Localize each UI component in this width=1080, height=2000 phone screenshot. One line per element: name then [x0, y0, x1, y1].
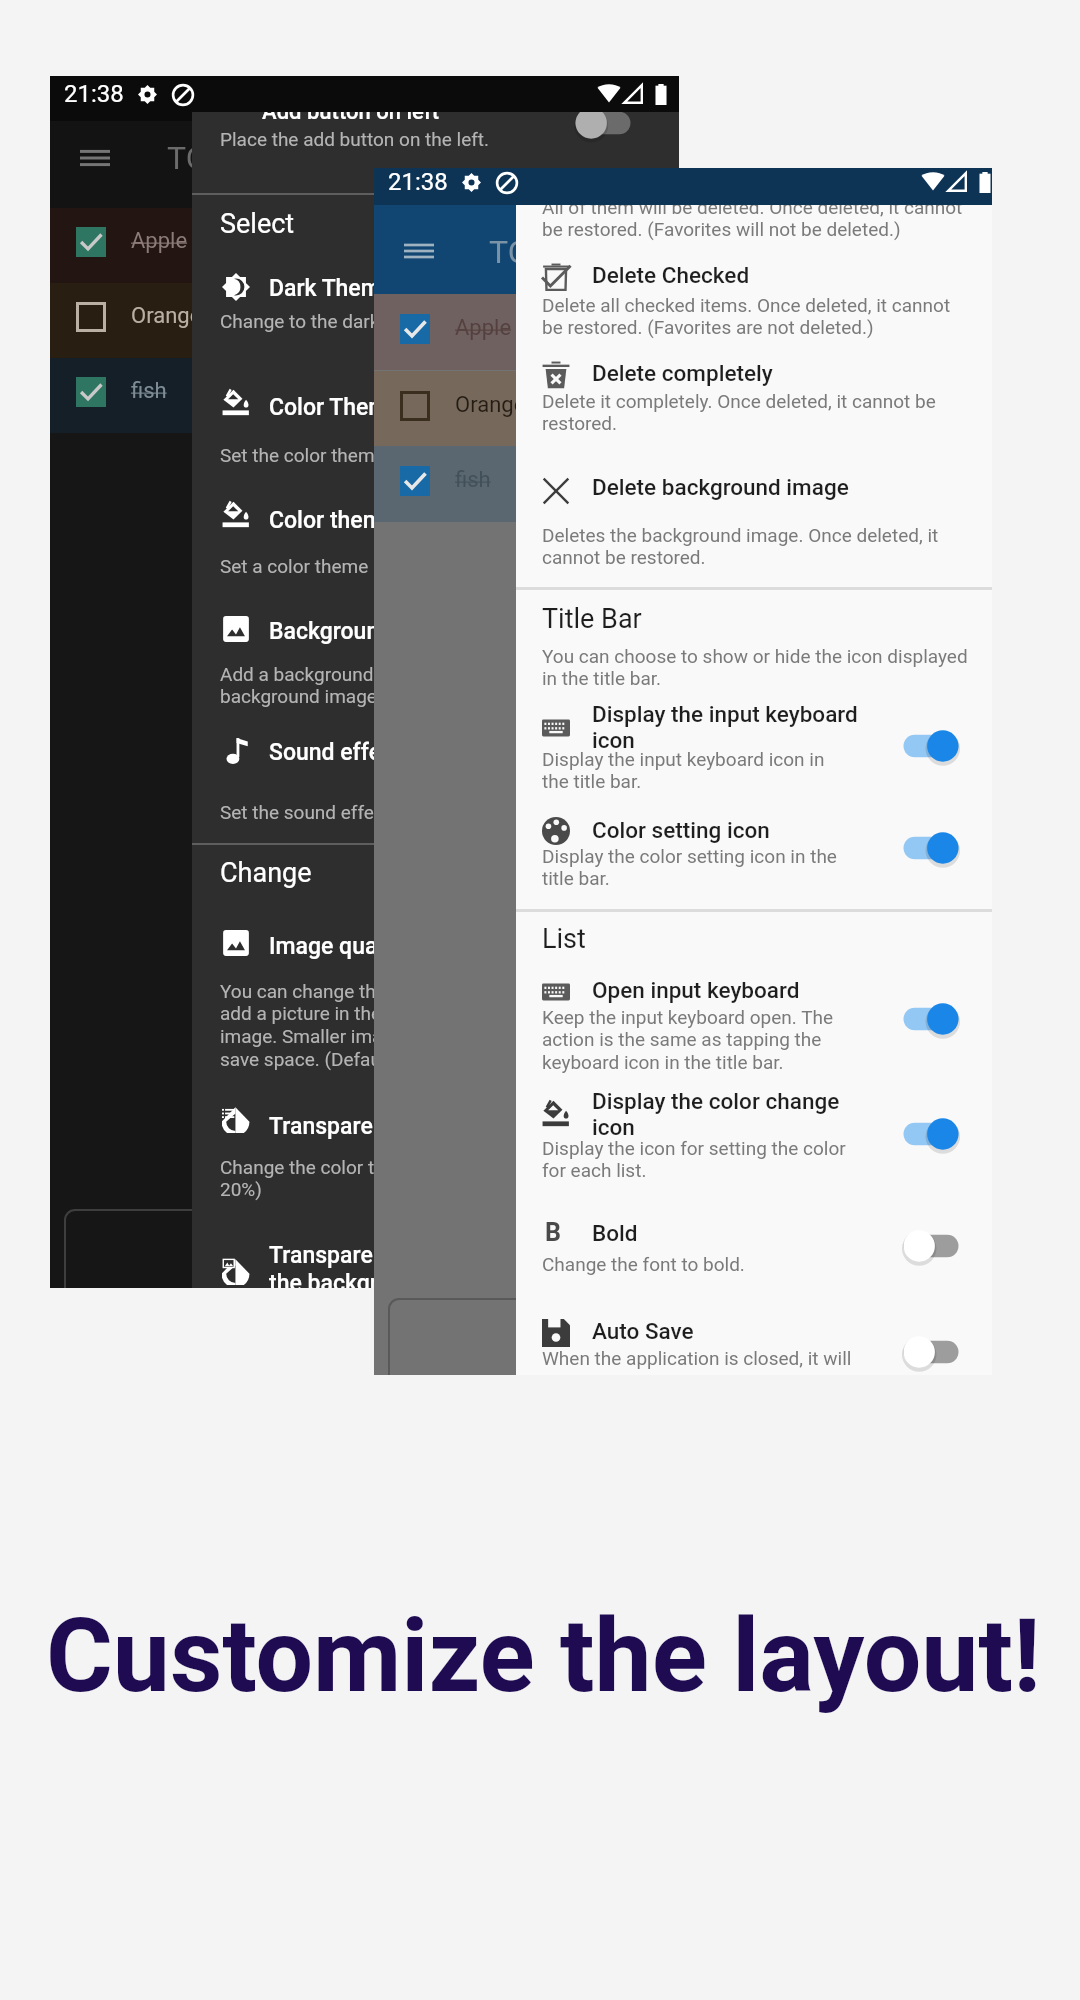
- staticText: Change the color t 20%): [220, 1156, 375, 1201]
- button[interactable]: Setting enabled: [900, 999, 962, 1039]
- staticText: Transparency of the background image: [269, 1242, 436, 1288]
- staticText: Delete it completely. Once deleted, it c…: [542, 390, 936, 435]
- staticText: Apple: [131, 228, 188, 254]
- staticText: Display the color change icon: [592, 1088, 840, 1141]
- button[interactable]: Color Theme: [192, 112, 679, 140]
- staticText: Display the input keyboard icon: [592, 701, 858, 754]
- button[interactable]: Open input keyboard: [516, 205, 992, 273]
- button[interactable]: Setting enabled: [900, 1114, 962, 1154]
- staticText: All of them will be deleted. Once delete…: [542, 205, 963, 241]
- button[interactable]: Color setting icon: [516, 205, 992, 250]
- staticText: You can change th add a picture in the i…: [220, 980, 383, 1071]
- staticText: Auto Save: [592, 1318, 694, 1344]
- button[interactable]: Image quality: [192, 112, 679, 203]
- button[interactable]: Delete Checked: [516, 205, 992, 250]
- button[interactable]: Background: [192, 112, 679, 157]
- staticText: Apple: [455, 315, 512, 341]
- staticText: Deletes the background image. Once delet…: [542, 524, 939, 569]
- button[interactable]: Apple: [50, 208, 679, 283]
- button[interactable]: Delete background image: [516, 205, 992, 250]
- staticText: Add a background background image: [220, 663, 377, 708]
- staticText: Change to the dark: [220, 310, 380, 332]
- button[interactable]: Orange: [50, 283, 679, 358]
- staticText: Color setting icon: [592, 817, 770, 843]
- staticText: Delete all checked items. Once deleted, …: [542, 294, 951, 339]
- button[interactable]: Delete completely: [516, 205, 992, 250]
- staticText: Keep the input keyboard open. The action…: [542, 1006, 834, 1074]
- staticText: fish: [131, 378, 167, 404]
- staticText: Color Theme: [269, 394, 401, 421]
- staticText: Image quality: [269, 933, 408, 960]
- button[interactable]: Setting disabled: [900, 1332, 962, 1372]
- staticText: Background: [269, 618, 393, 645]
- staticText: Set the color them: [220, 444, 375, 466]
- button[interactable]: Color theme: [192, 112, 679, 140]
- button[interactable]: Menu: [404, 241, 434, 261]
- staticText: 21:38: [388, 168, 448, 196]
- staticText: You can choose to show or hide the icon …: [542, 645, 968, 690]
- button[interactable]: Setting enabled: [900, 726, 962, 766]
- staticText: Delete completely: [592, 360, 773, 386]
- button[interactable]: fish: [374, 446, 992, 522]
- button[interactable]: Transparency: [192, 112, 679, 157]
- button[interactable]: Orange: [374, 371, 992, 447]
- staticText: Select: [220, 208, 295, 240]
- staticText: Change the font to bold.: [542, 1253, 745, 1275]
- staticText: TODO: [167, 139, 251, 177]
- button[interactable]: Add item: [388, 1298, 688, 1375]
- button[interactable]: Apple: [374, 294, 992, 370]
- button[interactable]: Transparency of the background image: [192, 112, 679, 195]
- staticText: Orange: [455, 392, 526, 418]
- staticText: Display the input keyboard icon in the t…: [542, 748, 825, 793]
- staticText: TODO: [489, 233, 573, 271]
- button[interactable]: Sound effect: [192, 112, 679, 140]
- staticText: When the application is closed, it will: [542, 1347, 852, 1369]
- staticText: Delete Checked: [592, 262, 750, 288]
- staticText: 21:38: [64, 80, 124, 108]
- button[interactable]: Dark Theme: [192, 112, 679, 140]
- button[interactable]: fish: [50, 358, 679, 433]
- staticText: B: [545, 1218, 561, 1246]
- button[interactable]: Display the color change icon: [516, 205, 992, 258]
- staticText: Transparency: [269, 1113, 409, 1140]
- button[interactable]: Setting enabled: [900, 828, 962, 868]
- staticText: Orange: [131, 303, 202, 329]
- staticText: fish: [455, 467, 491, 493]
- staticText: Title Bar: [542, 603, 642, 635]
- staticText: Sound effect: [269, 739, 401, 766]
- button[interactable]: Auto Save: [516, 205, 992, 245]
- staticText: Customize the layout!: [46, 1596, 1041, 1716]
- button[interactable]: Menu: [80, 147, 110, 169]
- staticText: Display the color setting icon in the ti…: [542, 845, 837, 890]
- staticText: Place the add button on the left.: [220, 128, 490, 150]
- staticText: Color theme: [269, 507, 396, 534]
- button[interactable]: Setting disabled: [900, 1226, 962, 1266]
- button[interactable]: B: [516, 205, 992, 245]
- staticText: Display the icon for setting the color f…: [542, 1137, 846, 1182]
- button[interactable]: Display the input keyboard icon: [516, 205, 992, 258]
- staticText: Set the sound effe: [220, 801, 374, 823]
- staticText: Delete background image: [592, 474, 849, 500]
- staticText: Change: [220, 857, 312, 889]
- staticText: Add button on left: [262, 112, 439, 125]
- staticText: List: [542, 923, 586, 955]
- staticText: Set a color theme: [220, 555, 369, 577]
- staticText: Dark Theme: [269, 275, 394, 302]
- button[interactable]: Add item: [64, 1209, 364, 1288]
- staticText: Open input keyboard: [592, 977, 800, 1003]
- staticText: Bold: [592, 1220, 638, 1246]
